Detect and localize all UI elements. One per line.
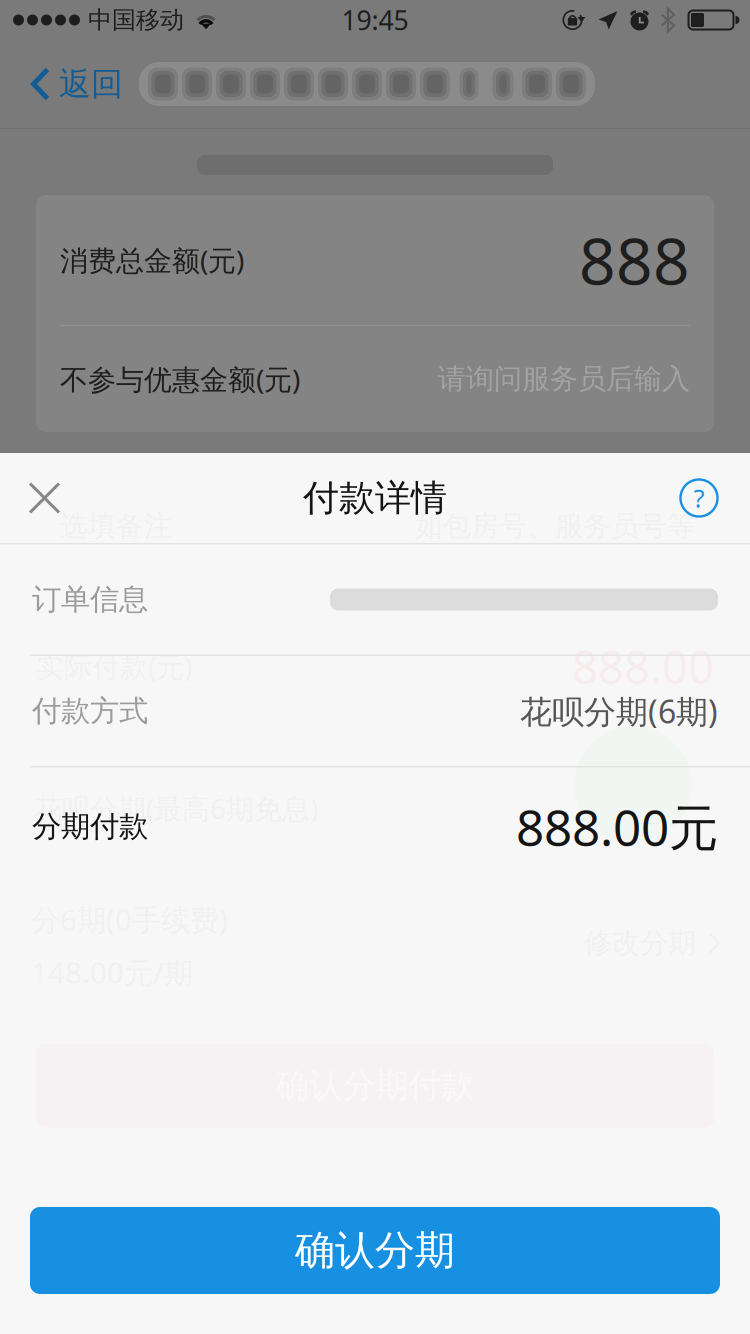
staticText: ?: [693, 481, 704, 515]
staticText: 花呗分期(最高6期免息): [34, 790, 318, 827]
staticText: 中国移动: [88, 5, 184, 35]
staticText: 付款详情: [303, 476, 447, 520]
staticText: 888: [579, 217, 690, 302]
button[interactable]: 确认分期: [30, 1207, 720, 1294]
button[interactable]: 返回: [0, 40, 137, 128]
staticText: 订单信息: [32, 581, 148, 617]
staticText: 花呗分期(6期): [520, 690, 718, 732]
staticText: 实际付款(元): [36, 648, 192, 685]
button[interactable]: 帮助: [659, 453, 750, 543]
staticText: 19:45: [341, 2, 408, 38]
staticText: 请询问服务员后输入: [438, 362, 690, 396]
staticText: 888.00: [572, 636, 714, 697]
button[interactable]: 关闭: [0, 453, 93, 543]
staticText: 如包房号、服务员号等: [415, 509, 695, 543]
staticText: 分期付款: [32, 808, 148, 844]
staticText: 确认分期: [295, 1226, 455, 1275]
staticText: 消费总金额(元): [60, 241, 244, 279]
staticText: 付款方式: [32, 693, 148, 729]
staticText: 不参与优惠金额(元): [60, 360, 300, 398]
staticText: 返回: [59, 64, 123, 104]
staticText: 888.00元: [516, 794, 718, 859]
